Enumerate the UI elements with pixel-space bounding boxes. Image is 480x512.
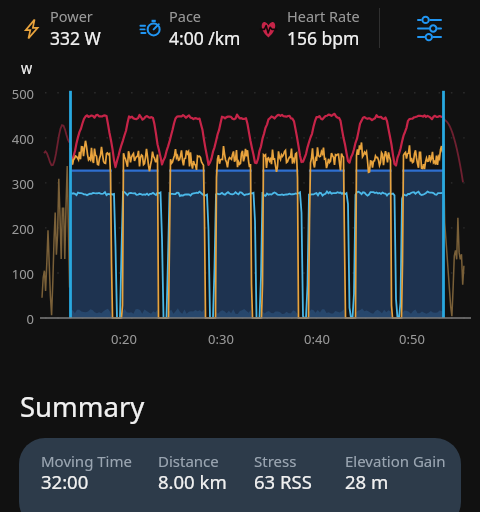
staticText: 0:50 bbox=[390, 330, 434, 348]
staticText: 0:40 bbox=[295, 330, 339, 348]
staticText: 500 bbox=[0, 85, 34, 103]
staticText: 0:20 bbox=[102, 330, 146, 348]
staticText: 156 bpm bbox=[287, 26, 360, 50]
staticText: Heart Rate bbox=[287, 6, 360, 26]
staticText: 332 W bbox=[50, 26, 101, 50]
staticText: Elevation Gain bbox=[345, 451, 446, 471]
staticText: 0:30 bbox=[199, 330, 243, 348]
staticText: 0 bbox=[0, 310, 34, 328]
staticText: Distance bbox=[158, 451, 219, 471]
button[interactable]: Power bbox=[21, 0, 101, 56]
staticText: 400 bbox=[0, 130, 34, 148]
staticText: Pace bbox=[169, 6, 202, 26]
button[interactable]: Chart settings bbox=[405, 8, 453, 48]
button[interactable]: Heart Rate bbox=[258, 0, 360, 56]
staticText: W bbox=[21, 61, 33, 77]
staticText: 100 bbox=[0, 265, 34, 283]
staticText: Power bbox=[50, 6, 93, 26]
staticText: 300 bbox=[0, 175, 34, 193]
staticText: Stress bbox=[254, 451, 297, 471]
staticText: 200 bbox=[0, 220, 34, 238]
button[interactable]: Moving Time bbox=[19, 438, 461, 512]
staticText: Summary bbox=[20, 388, 145, 425]
staticText: 63 RSS bbox=[254, 469, 312, 494]
staticText: 8.00 km bbox=[158, 469, 227, 494]
staticText: Moving Time bbox=[41, 451, 132, 471]
staticText: 32:00 bbox=[41, 469, 89, 494]
staticText: 28 m bbox=[345, 469, 389, 494]
button[interactable]: Pace bbox=[140, 0, 241, 56]
staticText: 4:00 /km bbox=[169, 26, 241, 50]
